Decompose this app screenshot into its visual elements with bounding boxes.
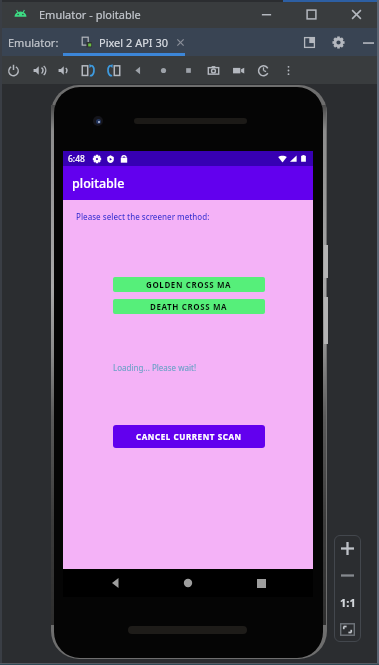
staticText: Please select the screener method: <box>76 211 210 222</box>
button[interactable]: Settings <box>330 34 346 50</box>
staticText: GOLDEN CROSS MA <box>146 279 232 290</box>
staticText: Pixel 2 API 30 <box>99 35 169 50</box>
button[interactable]: Actual size <box>334 589 361 616</box>
button[interactable]: Fit to screen <box>334 616 361 642</box>
button[interactable]: Hide <box>360 34 376 50</box>
button[interactable]: CANCEL CURRENT SCAN <box>113 425 265 448</box>
button[interactable]: Volume up <box>26 56 51 84</box>
button[interactable]: Back <box>96 569 136 597</box>
button[interactable]: History <box>251 56 276 84</box>
staticText: Emulator: <box>8 35 59 50</box>
button[interactable]: DEATH CROSS MA <box>113 299 265 314</box>
button[interactable]: Back <box>126 56 151 84</box>
staticText: DEATH CROSS MA <box>150 301 228 312</box>
staticText: 6:48 <box>68 153 85 165</box>
button[interactable]: Power <box>1 56 26 84</box>
button[interactable]: More <box>276 56 301 84</box>
button[interactable]: Zoom in <box>334 535 361 562</box>
button[interactable]: Volume down <box>51 56 76 84</box>
button[interactable]: Pixel 2 API 30 <box>81 28 185 56</box>
button[interactable]: Rotate right <box>101 56 126 84</box>
staticText: Emulator - ploitable <box>39 7 141 22</box>
button[interactable]: Screenshot <box>201 56 226 84</box>
staticText: ploitable <box>72 175 125 192</box>
button[interactable]: Minimize <box>244 1 289 27</box>
button[interactable]: Overview <box>176 56 201 84</box>
button[interactable]: Split window <box>301 34 317 50</box>
button[interactable]: Rotate left <box>76 56 101 84</box>
button[interactable]: GOLDEN CROSS MA <box>113 277 265 292</box>
staticText: 1:1 <box>340 595 356 610</box>
button[interactable]: Home <box>168 569 208 597</box>
button[interactable]: Record <box>226 56 251 84</box>
button[interactable]: Recents <box>241 569 281 597</box>
staticText: CANCEL CURRENT SCAN <box>136 431 242 442</box>
button[interactable]: Close <box>334 1 379 27</box>
staticText: Loading... Please wait! <box>113 362 197 373</box>
button[interactable]: Zoom out <box>334 562 361 589</box>
button[interactable]: Home <box>151 56 176 84</box>
button[interactable]: Maximize <box>289 1 334 27</box>
